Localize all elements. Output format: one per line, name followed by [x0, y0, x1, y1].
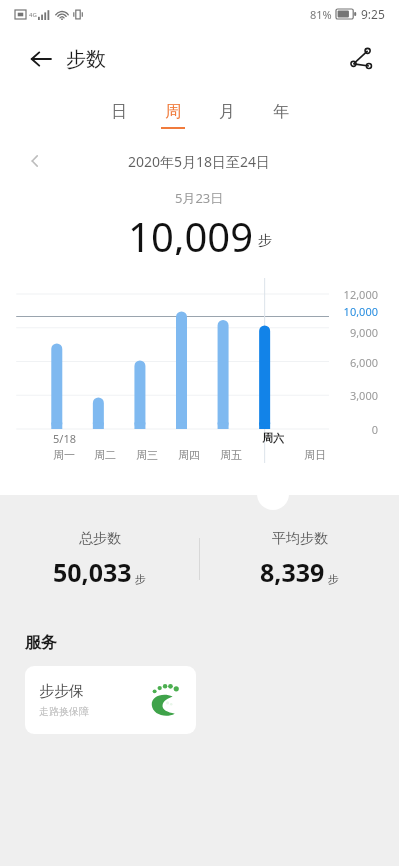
staticText: 总步数	[79, 530, 121, 548]
staticText: 步	[258, 232, 272, 250]
button[interactable]: Back	[22, 40, 60, 78]
staticText: 50,033	[53, 555, 132, 589]
staticText: 12,000	[343, 287, 378, 302]
staticText: 周二	[94, 448, 116, 462]
staticText: 8,339	[260, 555, 325, 589]
staticText: 3,000	[349, 388, 378, 403]
staticText: 年	[273, 102, 289, 122]
staticText: 步步保	[39, 682, 84, 701]
button[interactable]: 周六	[256, 431, 290, 445]
staticText: 日	[111, 102, 127, 122]
staticText: 服务	[25, 633, 57, 653]
staticText: 10,009	[128, 209, 254, 255]
staticText: 0	[371, 422, 378, 437]
staticText: 周一	[53, 448, 75, 462]
button[interactable]: 周五	[214, 448, 248, 462]
button[interactable]: 周	[161, 102, 185, 129]
button[interactable]: Share	[341, 39, 381, 79]
button[interactable]: 步步保	[25, 666, 196, 734]
staticText: 步数	[66, 47, 106, 72]
staticText: 4G	[29, 11, 37, 19]
button[interactable]: 总步数	[0, 530, 199, 589]
staticText: 5/18	[53, 431, 76, 446]
staticText: 5月23日	[175, 189, 224, 207]
staticText: 9:25	[361, 6, 385, 22]
button[interactable]: 月	[215, 102, 239, 129]
staticText: 周五	[220, 448, 242, 462]
button[interactable]: 周一	[47, 448, 81, 462]
button[interactable]: 日	[107, 102, 131, 129]
staticText: 周四	[178, 448, 200, 462]
button[interactable]: 年	[269, 102, 293, 129]
staticText: 平均步数	[272, 530, 328, 548]
button[interactable]: 周二	[88, 448, 122, 462]
staticText: 9,000	[349, 325, 378, 340]
staticText: 81%	[310, 7, 332, 22]
staticText: 周日	[304, 448, 326, 462]
staticText: 10,000	[343, 304, 378, 319]
staticText: 6,000	[349, 355, 378, 370]
staticText: 2020年5月18日至24日	[128, 152, 271, 171]
button[interactable]: 平均步数	[200, 530, 399, 589]
staticText: 月	[219, 102, 235, 122]
staticText: 步	[135, 572, 146, 586]
button[interactable]: 周三	[130, 448, 164, 462]
button[interactable]: 周日	[298, 448, 332, 462]
staticText: 步	[328, 572, 339, 586]
button[interactable]: 周四	[172, 448, 206, 462]
button[interactable]: 5/18	[47, 431, 81, 446]
staticText: 周六	[262, 431, 284, 445]
staticText: 走路换保障	[39, 705, 89, 718]
staticText: 周三	[136, 448, 158, 462]
staticText: 周	[165, 102, 181, 122]
button[interactable]: Previous week	[20, 150, 50, 172]
